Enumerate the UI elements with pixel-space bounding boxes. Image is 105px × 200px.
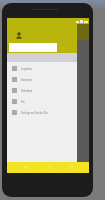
button[interactable]: Recents <box>66 162 76 173</box>
button[interactable]: Logistica <box>7 63 77 74</box>
button[interactable]: Logistica <box>7 18 77 173</box>
staticText: Desliga ou Fim do Dia <box>21 111 48 115</box>
staticText: Fio <box>21 100 25 104</box>
staticText: Hotelaria <box>21 89 33 93</box>
button[interactable]: Sistemas <box>7 74 77 85</box>
staticText: Logistica <box>21 67 32 71</box>
button[interactable]: Hotelaria <box>7 85 77 96</box>
button[interactable]: Home <box>43 162 53 173</box>
button[interactable]: Desliga ou Fim do Dia <box>7 107 77 118</box>
staticText: Sistemas <box>21 78 32 82</box>
button[interactable]: Fio <box>7 96 77 107</box>
button[interactable]: Back <box>20 162 30 173</box>
